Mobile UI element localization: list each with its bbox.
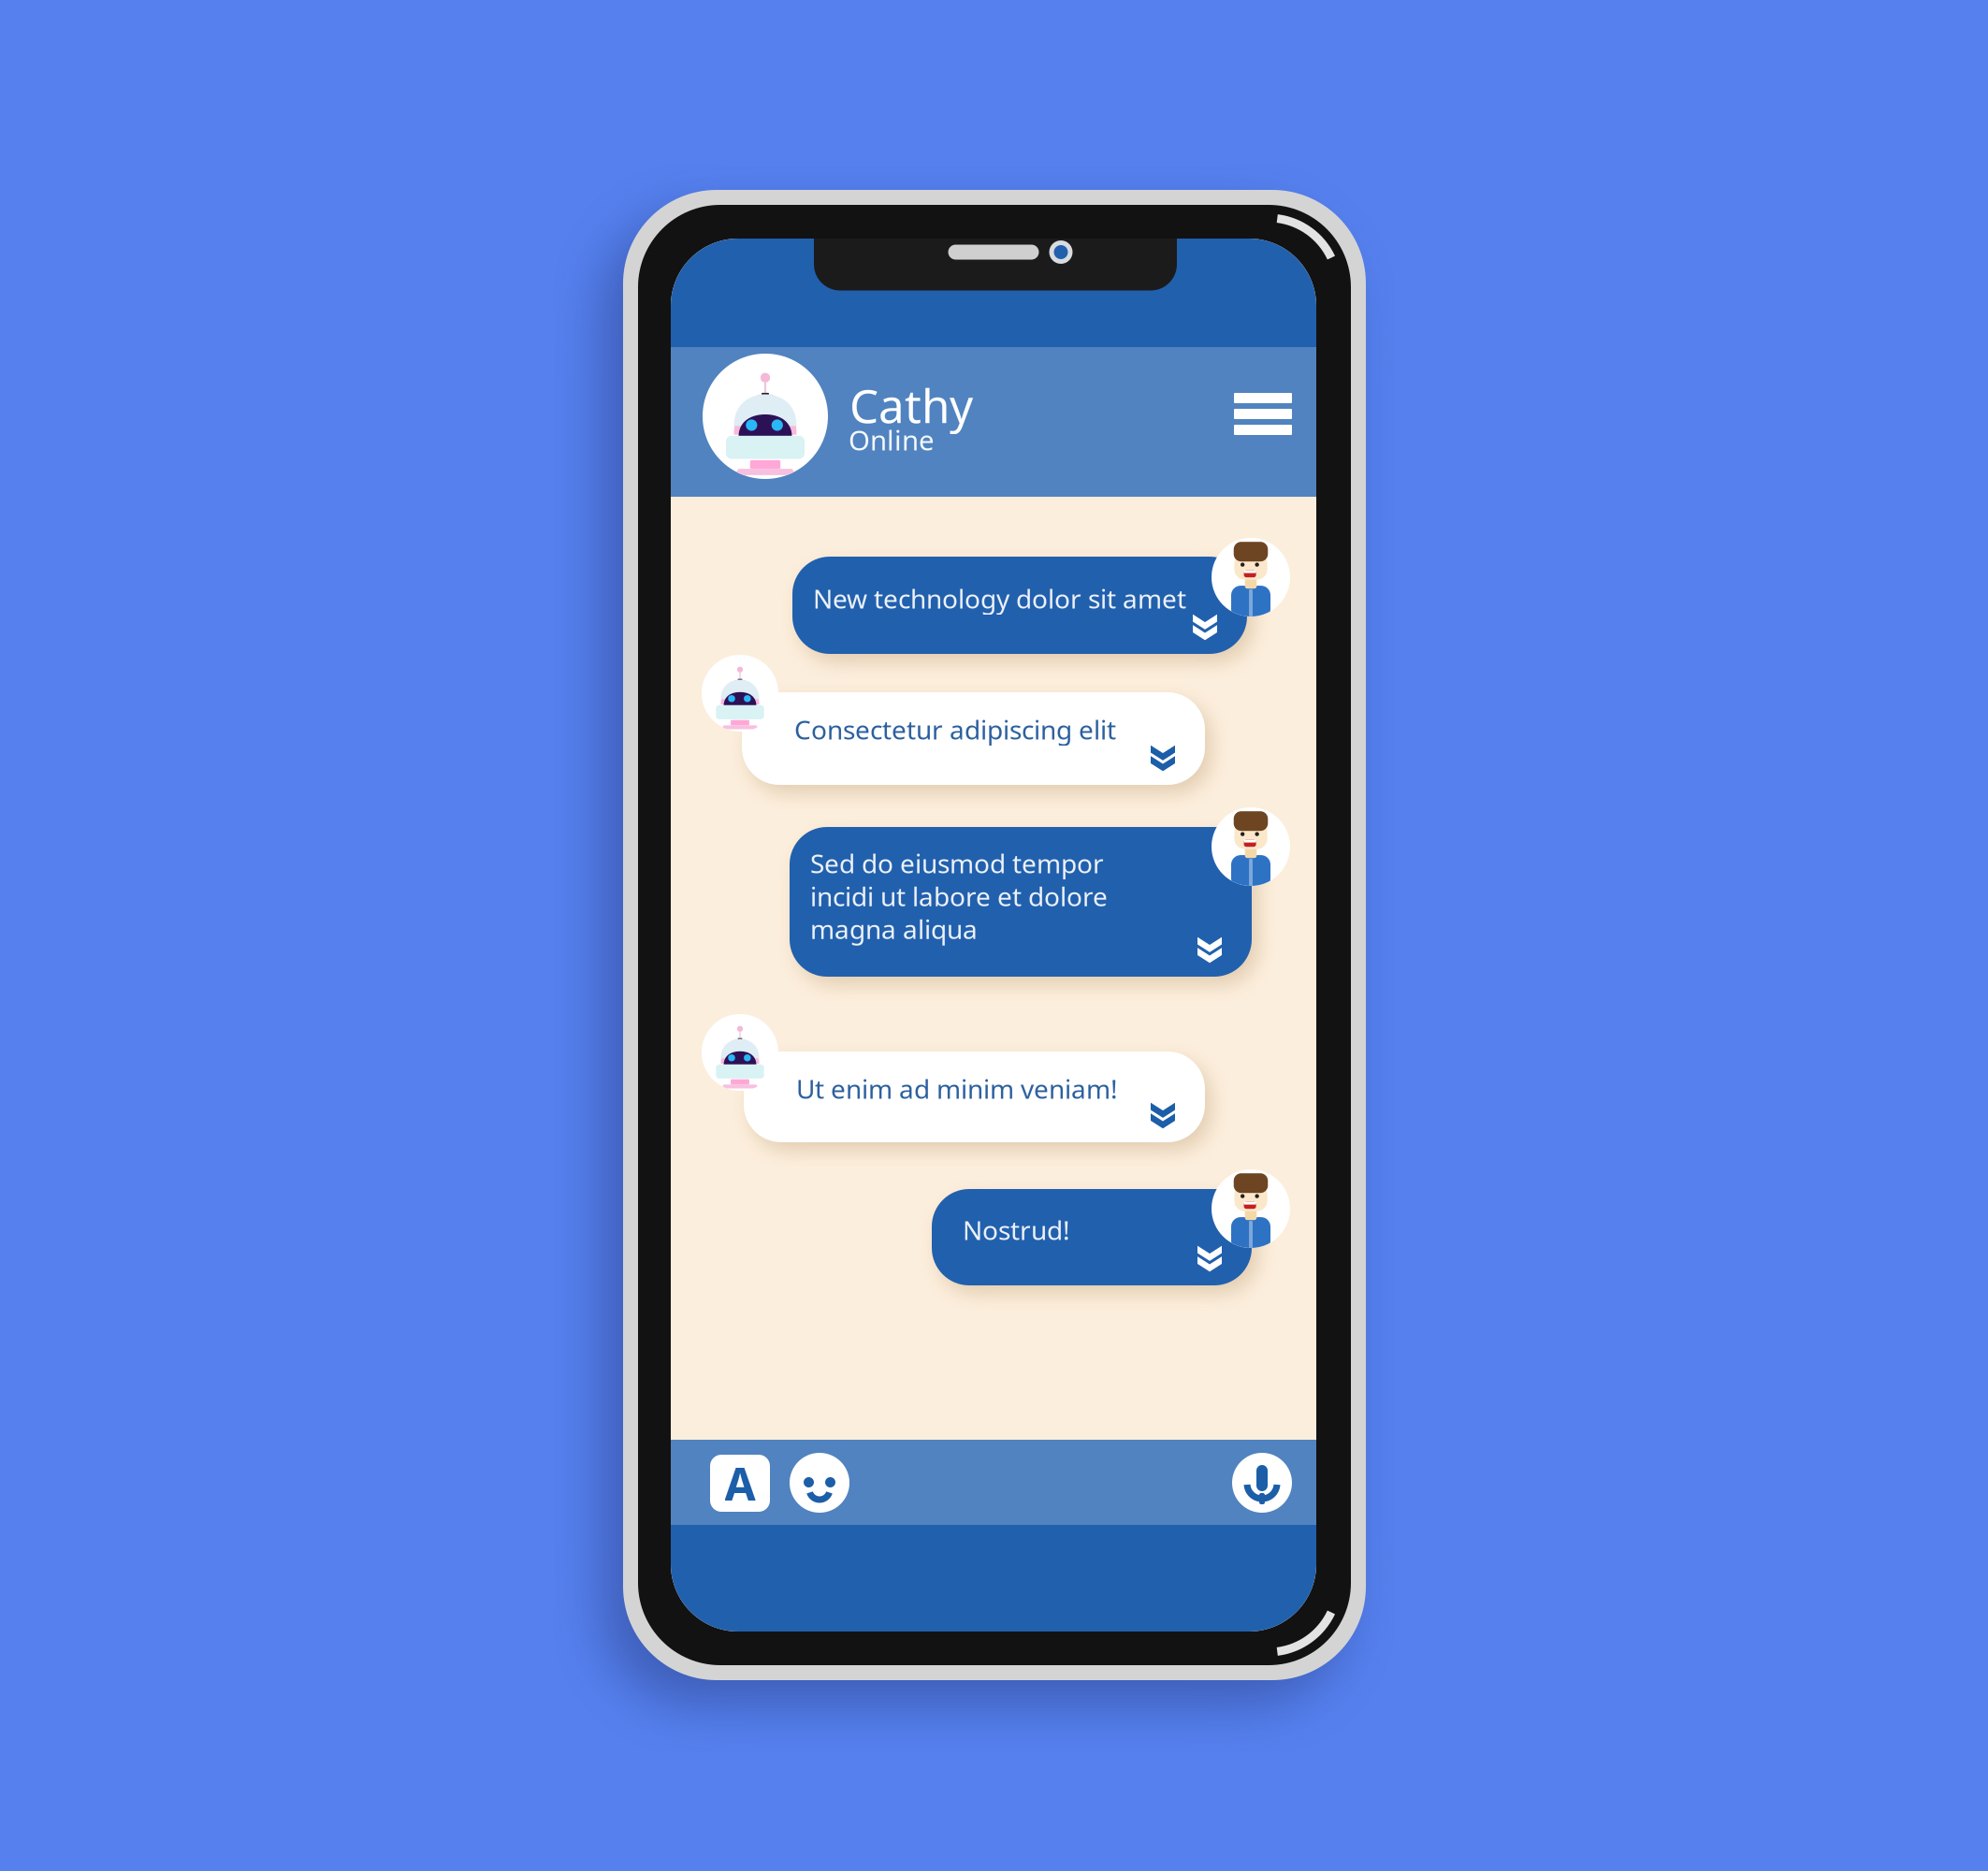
staticText: Cathy <box>849 374 973 436</box>
staticText: A <box>725 1453 755 1513</box>
staticText: Consectetur adipiscing elit <box>794 712 1116 747</box>
button[interactable]: Emoji <box>790 1453 849 1513</box>
staticText: magna aliqua <box>810 912 978 946</box>
button[interactable]: Nostrud! <box>932 1189 1252 1285</box>
staticText: incidi ut labore et dolore <box>810 879 1108 913</box>
button[interactable]: Cathy <box>703 347 1226 497</box>
staticText: Nostrud! <box>963 1212 1070 1247</box>
staticText: Ut enim ad minim veniam! <box>796 1071 1118 1106</box>
staticText: Online <box>849 421 935 458</box>
staticText: Sed do eiusmod tempor <box>810 846 1104 880</box>
button[interactable]: Ut enim ad minim veniam! <box>744 1052 1205 1142</box>
button[interactable]: Menu <box>1234 393 1292 435</box>
button[interactable]: Text formatting <box>710 1455 770 1512</box>
button[interactable]: Consectetur adipiscing elit <box>742 692 1205 785</box>
button[interactable]: Voice message <box>1232 1453 1292 1513</box>
button[interactable]: New technology dolor sit amet <box>792 557 1247 654</box>
button[interactable]: Sed do eiusmod tempor <box>790 827 1252 977</box>
staticText: New technology dolor sit amet <box>813 581 1186 616</box>
